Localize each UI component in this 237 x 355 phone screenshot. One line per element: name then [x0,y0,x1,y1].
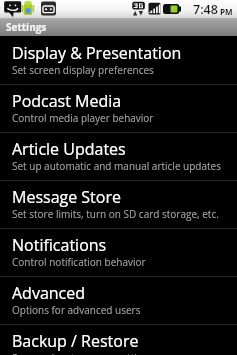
staticText: Notifications [12,234,107,256]
button[interactable]: Notifications [0,228,237,276]
staticText: 7:48 [193,1,218,18]
button[interactable]: Podcast Media [0,84,237,132]
button[interactable]: Article Updates [0,132,237,180]
staticText: Display & Presentation [12,42,182,64]
staticText: Article Updates [12,138,126,160]
staticText: Set screen display preferences [12,63,154,77]
staticText: Set store limits, turn on SD card storag… [12,207,219,221]
staticText: Options for advanced users [12,303,141,317]
staticText: Backup / Restore [12,330,139,352]
staticText: Control notification behavior [12,255,146,269]
staticText: Advanced [12,282,86,304]
button[interactable]: Advanced [0,276,237,324]
staticText: Control media player behavior [12,111,154,125]
button[interactable]: Display & Presentation [0,36,237,84]
staticText: Podcast Media [12,90,122,112]
staticText: Settings [6,20,47,34]
button[interactable]: Message Store [0,180,237,228]
staticText: Save and restore your settings [12,351,154,355]
staticText: PM [220,6,233,17]
staticText: Set up automatic and manual article upda… [12,159,221,173]
staticText: Message Store [12,186,121,208]
button[interactable]: Backup / Restore [0,324,237,355]
